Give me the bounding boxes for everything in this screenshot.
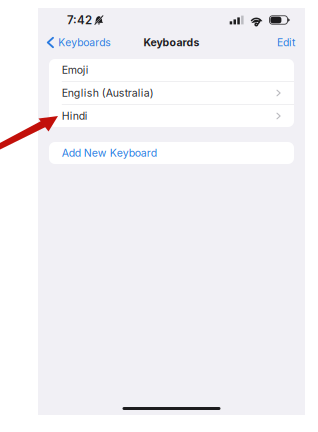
staticText: 7:42: [67, 13, 92, 27]
button[interactable]: Keyboards: [38, 33, 110, 52]
staticText: English (Australia): [62, 87, 154, 99]
button[interactable]: Add New Keyboard: [49, 142, 294, 164]
staticText: Add New Keyboard: [62, 147, 157, 159]
button[interactable]: English (Australia): [49, 82, 294, 104]
staticText: Emoji: [62, 64, 89, 76]
staticText: Keyboards: [143, 36, 199, 49]
button[interactable]: Edit: [277, 33, 305, 52]
staticText: Edit: [277, 36, 295, 49]
staticText: Keyboards: [58, 36, 110, 49]
button[interactable]: Emoji: [49, 59, 294, 81]
staticText: Hindi: [62, 110, 88, 122]
button[interactable]: Hindi: [49, 105, 294, 127]
